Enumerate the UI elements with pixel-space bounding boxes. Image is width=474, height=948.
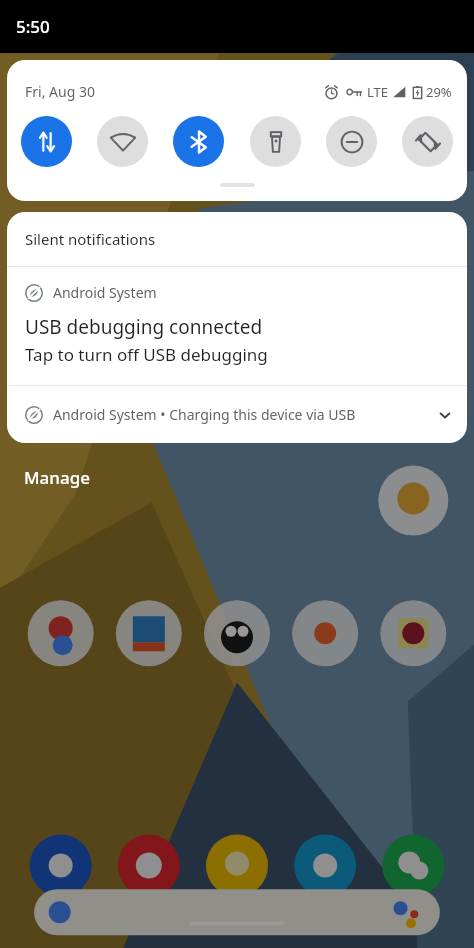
staticText: Silent notifications (25, 229, 156, 249)
button[interactable]: Flashlight (250, 116, 301, 167)
button[interactable]: Mobile data (21, 116, 72, 167)
button[interactable]: Wi-Fi (97, 116, 148, 167)
button[interactable]: Auto-rotate (402, 116, 453, 167)
staticText: Tap to turn off USB debugging (25, 343, 268, 366)
staticText: LTE (367, 83, 389, 101)
button[interactable]: Do not disturb (326, 116, 377, 167)
staticText: Manage (24, 466, 91, 489)
staticText: 5:50 (16, 15, 50, 38)
staticText: Android System (53, 283, 157, 302)
button[interactable]: Android System (7, 267, 467, 385)
staticText: Android System • Charging this device vi… (53, 405, 356, 424)
staticText: 29% (426, 83, 452, 101)
staticText: USB debugging connected (25, 314, 263, 340)
staticText: Fri, Aug 30 (25, 82, 95, 101)
button[interactable]: Silent notifications (7, 212, 467, 266)
button[interactable]: Bluetooth (173, 116, 224, 167)
button[interactable]: Android System • Charging this device vi… (7, 386, 467, 443)
button[interactable]: Manage (20, 460, 95, 495)
